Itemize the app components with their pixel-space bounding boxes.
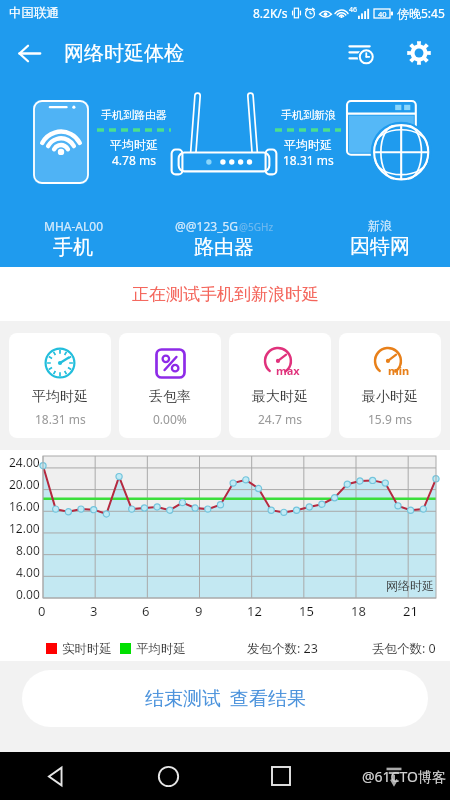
staticText: 平均时延 [136,641,186,657]
button[interactable]: Hide navigation bar [337,752,450,800]
button[interactable]: 丢包率 [119,333,221,438]
staticText: 12.00 [9,520,40,536]
button[interactable]: 结束测试 [22,670,428,727]
staticText: 手机 [53,235,93,260]
button[interactable]: Back [0,752,112,800]
staticText: min [388,363,410,378]
button[interactable]: Back [6,30,52,76]
button[interactable]: 平均时延 [9,333,111,438]
button[interactable]: min [339,333,441,438]
staticText: 0.00% [153,411,187,427]
staticText: 3 [90,602,98,620]
staticText: 6 [142,602,150,620]
button[interactable]: Settings [396,30,442,76]
staticText: 0.00 [16,586,40,602]
staticText: 傍晚5:45 [397,5,445,21]
staticText: 15 [299,602,314,620]
staticText: 24.7 ms [258,411,302,427]
staticText: 18 [351,602,366,620]
staticText: 0 [38,602,46,620]
staticText: 平均时延 [32,388,88,406]
staticText: 15.9 ms [368,411,412,427]
staticText: 网络时延 [386,578,434,593]
staticText: 中国联通 [9,5,59,21]
staticText: 40 [378,9,387,19]
staticText: 4.78 ms [112,152,156,168]
staticText: 24.00 [9,454,40,470]
staticText: 8.2K/s [253,5,288,21]
staticText: 16.00 [9,498,40,514]
staticText: 正在测试手机到新浪时延 [132,284,319,305]
staticText: 9 [195,602,203,620]
staticText: 4.00 [16,564,40,580]
staticText: 丢包率 [149,388,191,406]
button[interactable]: max [229,333,331,438]
staticText: 最小时延 [362,388,418,406]
staticText: 21 [403,602,418,620]
staticText: 8.00 [16,542,40,558]
staticText: @61CTO博客 [362,767,446,786]
staticText: 丢包个数: 0 [372,640,436,657]
staticText: 20.00 [9,476,40,492]
staticText: MHA-AL00 [44,218,103,234]
staticText: 18.31 ms [35,411,86,427]
staticText: 最大时延 [252,388,308,406]
staticText: 因特网 [350,234,410,259]
staticText: 结束测试 [145,687,221,711]
staticText: 发包个数: 23 [247,640,318,657]
staticText: max [276,363,300,378]
staticText: 实时时延 [62,641,112,657]
button[interactable]: Home [112,752,224,800]
button[interactable]: Recents [224,752,337,800]
staticText: 新浪 [368,218,392,233]
staticText: 18.31 ms [283,152,334,168]
staticText: 12 [247,602,262,620]
button[interactable]: History [338,30,384,76]
staticText: 手机到新浪 [281,108,336,122]
staticText: 平均时延 [284,137,332,152]
staticText: 手机到路由器 [101,108,167,122]
staticText: @5GHz [239,220,274,234]
staticText: @@123_5G [175,218,239,234]
staticText: 平均时延 [110,137,158,152]
staticText: 网络时延体检 [64,41,184,66]
staticText: 路由器 [194,235,254,260]
staticText: 46 [349,5,358,15]
staticText: 查看结果 [230,687,306,711]
